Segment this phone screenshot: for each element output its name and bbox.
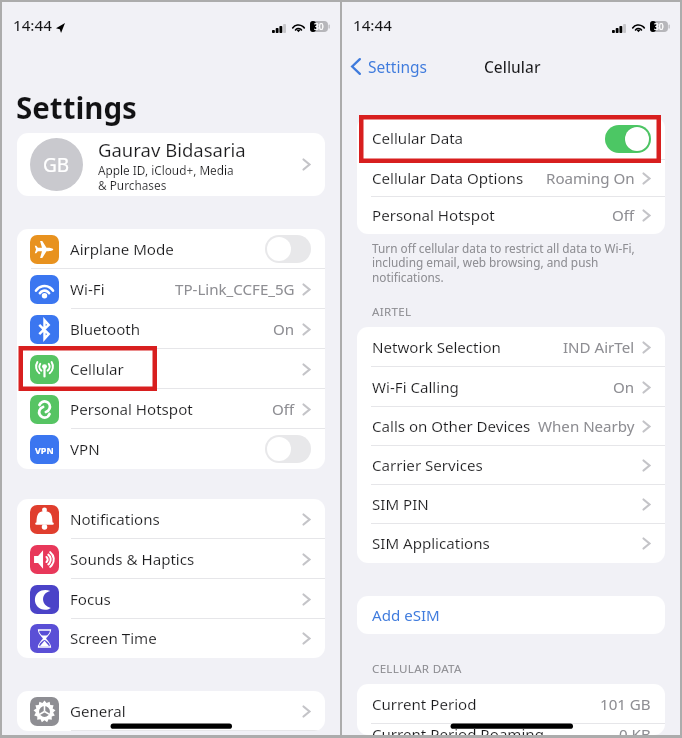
staticText: SIM Applications xyxy=(372,533,490,554)
button[interactable]: Focus xyxy=(17,579,325,619)
button[interactable]: Toggle off xyxy=(265,235,311,263)
staticText: Gaurav Bidasaria xyxy=(98,137,246,162)
staticText: Airplane Mode xyxy=(70,239,174,260)
staticText: Cellular xyxy=(70,359,124,380)
staticText: Network Selection xyxy=(372,337,501,358)
button[interactable]: Cellular Data Options xyxy=(357,160,665,197)
button[interactable]: Screen Time xyxy=(17,619,325,658)
staticText: Add eSIM xyxy=(372,605,440,626)
staticText: 14:44 xyxy=(13,15,52,36)
button[interactable]: Toggle off xyxy=(265,435,311,463)
staticText: Screen Time xyxy=(70,628,157,649)
staticText: Current Period Roaming xyxy=(372,724,544,735)
staticText: Bluetooth xyxy=(70,319,141,340)
button[interactable]: Notifications xyxy=(17,499,325,539)
button[interactable]: Toggle on xyxy=(605,125,651,153)
staticText: Turn off cellular data to restrict all d… xyxy=(372,240,635,286)
staticText: 0 KB xyxy=(619,724,651,735)
button[interactable]: Personal Hotspot xyxy=(357,197,665,234)
staticText: VPN xyxy=(35,444,54,456)
staticText: GB xyxy=(43,152,70,178)
button[interactable]: Network Selection xyxy=(357,327,665,367)
button[interactable]: Cellular xyxy=(17,349,325,389)
button[interactable]: Wi-Fi Calling xyxy=(357,367,665,407)
staticText: TP-Link_CCFE_5G xyxy=(175,279,295,300)
staticText: Settings xyxy=(16,87,137,127)
staticText: Personal Hotspot xyxy=(70,399,193,420)
staticText: Off xyxy=(612,205,635,226)
button[interactable]: Calls on Other Devices xyxy=(357,407,665,446)
button[interactable]: Sounds & Haptics xyxy=(17,539,325,579)
staticText: On xyxy=(613,377,635,398)
staticText: Apple ID, iCloud+, Media & Purchases xyxy=(98,162,234,193)
staticText: CELLULAR DATA xyxy=(372,661,462,677)
button[interactable]: Current Period xyxy=(357,684,665,724)
staticText: Focus xyxy=(70,589,111,610)
staticText: Carrier Services xyxy=(372,455,483,476)
staticText: Calls on Other Devices xyxy=(372,416,531,437)
button[interactable]: Settings xyxy=(351,56,427,77)
staticText: IND AirTel xyxy=(563,337,635,358)
button[interactable]: SIM PIN xyxy=(357,485,665,524)
staticText: 30 xyxy=(314,21,324,32)
staticText: Personal Hotspot xyxy=(372,205,495,226)
staticText: Cellular Data xyxy=(372,128,464,149)
staticText: 30 xyxy=(654,21,664,32)
staticText: SIM PIN xyxy=(372,494,429,515)
button[interactable]: Wi-Fi xyxy=(17,269,325,309)
button[interactable]: General xyxy=(17,691,325,731)
staticText: Wi-Fi xyxy=(70,279,105,300)
button[interactable]: Current Period Roaming xyxy=(357,724,665,735)
staticText: Current Period xyxy=(372,694,477,715)
staticText: When Nearby xyxy=(538,416,635,437)
staticText: Wi-Fi Calling xyxy=(372,377,459,398)
staticText: On xyxy=(273,319,295,340)
staticText: Sounds & Haptics xyxy=(70,549,195,570)
button[interactable]: Bluetooth xyxy=(17,309,325,349)
button[interactable]: Add eSIM xyxy=(357,596,665,634)
staticText: Settings xyxy=(368,56,427,77)
staticText: AIRTEL xyxy=(372,304,412,320)
button[interactable]: SIM Applications xyxy=(357,524,665,563)
button[interactable]: VPN xyxy=(17,429,325,469)
button[interactable]: Personal Hotspot xyxy=(17,389,325,429)
button[interactable]: Airplane Mode xyxy=(17,229,325,269)
staticText: General xyxy=(70,701,126,722)
staticText: Roaming On xyxy=(546,168,635,189)
staticText: Cellular xyxy=(484,56,541,77)
staticText: Cellular Data Options xyxy=(372,168,524,189)
button[interactable]: GB xyxy=(17,133,325,196)
staticText: Off xyxy=(272,399,295,420)
staticText: VPN xyxy=(70,439,100,460)
button[interactable]: Cellular Data xyxy=(357,117,665,160)
staticText: 101 GB xyxy=(600,694,651,715)
button[interactable]: Carrier Services xyxy=(357,446,665,485)
staticText: 14:44 xyxy=(353,15,392,36)
staticText: Notifications xyxy=(70,509,160,530)
